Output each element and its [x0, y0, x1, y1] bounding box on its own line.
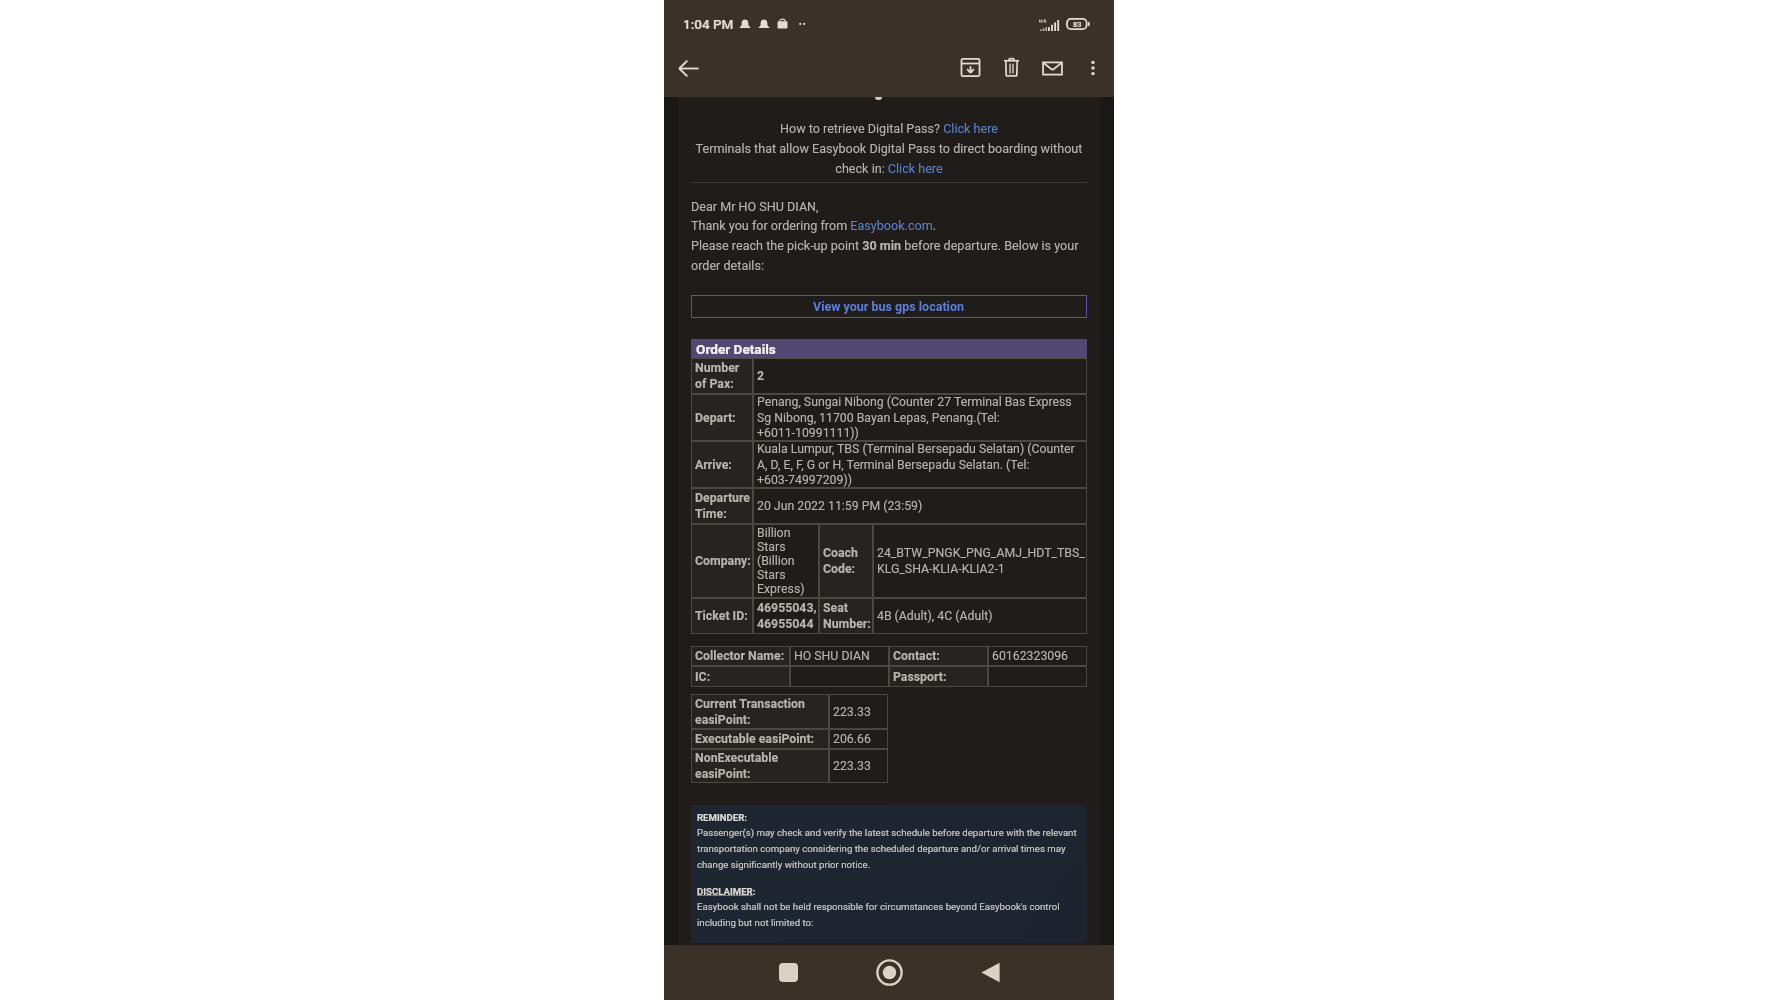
- staticText: 223.33: [833, 759, 871, 773]
- staticText: DISCLAIMER: Easybook shall not be held r…: [697, 886, 1083, 929]
- staticText: Kuala Lumpur, TBS (Terminal Bersepadu Se…: [757, 442, 1085, 487]
- staticText: Ticket ID:: [695, 609, 748, 623]
- staticText: 60162323096: [992, 649, 1069, 663]
- staticText: 46955043, 46955044: [757, 601, 817, 631]
- staticText: HO SHU DIAN: [794, 649, 870, 663]
- staticText: Company:: [695, 554, 751, 568]
- staticText: Arrive:: [695, 458, 732, 472]
- staticText: 83: [1073, 20, 1082, 29]
- staticText: Coach Code:: [823, 546, 858, 576]
- button[interactable]: Back: [963, 945, 1018, 1000]
- button[interactable]: Mark as unread: [1032, 48, 1072, 88]
- staticText: Order Details: [696, 341, 776, 357]
- staticText: Depart:: [695, 411, 736, 425]
- staticText: View your bus gps location: [813, 299, 965, 314]
- staticText: Departure Time:: [695, 491, 751, 521]
- staticText: 223.33: [833, 705, 871, 719]
- button[interactable]: View your bus gps location: [691, 295, 1087, 318]
- staticText: How to retrieve Digital Pass? Click here…: [686, 121, 1092, 176]
- staticText: 1:04 PM: [683, 16, 734, 32]
- staticText: Dear Mr HO SHU DIAN, Thank you for order…: [691, 199, 1089, 274]
- staticText: Seat Number:: [823, 601, 871, 631]
- staticText: 206.66: [833, 732, 871, 746]
- staticText: Passport:: [893, 670, 947, 684]
- staticText: Current Transaction easiPoint:: [695, 697, 827, 727]
- button[interactable]: Home: [862, 945, 917, 1000]
- staticText: Collector Name:: [695, 649, 785, 663]
- button[interactable]: Delete: [991, 47, 1032, 88]
- staticText: Billion Stars (Billion Stars Express): [757, 526, 817, 596]
- button[interactable]: More options: [1072, 47, 1114, 89]
- button[interactable]: Recents: [761, 945, 816, 1000]
- staticText: REMINDER: Passenger(s) may check and ver…: [697, 812, 1083, 871]
- staticText: Penang, Sungai Nibong (Counter 27 Termin…: [757, 395, 1085, 440]
- staticText: Executable easiPoint:: [695, 732, 815, 746]
- staticText: IC:: [695, 670, 711, 684]
- button[interactable]: How to retrieve Digital Pass? Click here…: [686, 121, 1092, 176]
- button[interactable]: Back: [664, 44, 712, 92]
- button[interactable]: Archive: [950, 47, 991, 88]
- staticText: 24_BTW_PNGK_PNG_AMJ_HDT_TBS_KLG_SHA-KLIA…: [877, 546, 1085, 576]
- staticText: Number of Pax:: [695, 361, 740, 391]
- staticText: 2: [757, 369, 765, 383]
- staticText: 4B (Adult), 4C (Adult): [877, 609, 993, 623]
- staticText: Contact:: [893, 649, 940, 663]
- staticText: NonExecutable easiPoint:: [695, 751, 827, 781]
- staticText: 20 Jun 2022 11:59 PM (23:59): [757, 499, 923, 513]
